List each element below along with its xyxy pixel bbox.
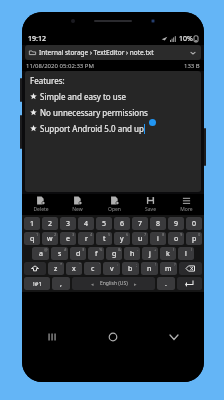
button[interactable]: & — [106, 247, 122, 260]
staticText: 6 — [120, 219, 125, 229]
button[interactable]: Key — [24, 262, 46, 275]
button[interactable]: * — [48, 262, 64, 275]
staticText: : — [117, 262, 119, 267]
button[interactable]: 5 — [96, 232, 112, 245]
staticText: b — [128, 264, 133, 274]
staticText: n — [147, 264, 152, 274]
button[interactable]: Recents — [22, 292, 82, 382]
staticText: English (US) — [100, 280, 128, 287]
button[interactable]: 4 — [78, 217, 94, 230]
staticText: 3 — [72, 232, 75, 237]
button[interactable]: 7 — [132, 217, 148, 230]
button[interactable]: Key — [177, 277, 202, 290]
staticText: Simple and easy to use — [40, 91, 127, 102]
staticText: y — [120, 234, 124, 244]
button[interactable]: ( — [160, 247, 176, 260]
staticText: g — [112, 249, 117, 259]
staticText: % — [99, 247, 103, 252]
staticText: " — [79, 262, 81, 267]
button[interactable]: @ — [32, 247, 49, 260]
button[interactable]: Save — [132, 194, 168, 215]
button[interactable]: , — [52, 277, 70, 290]
button[interactable]: ' — [84, 262, 101, 275]
button[interactable]: # — [51, 247, 68, 260]
button[interactable]: 0 — [186, 217, 202, 230]
button[interactable]: Features: — [25, 71, 201, 192]
staticText: 2 — [54, 232, 57, 237]
staticText: q — [30, 234, 35, 244]
staticText: 5 — [108, 232, 111, 237]
button[interactable]: + — [142, 247, 158, 260]
staticText: 0 — [192, 219, 197, 229]
button[interactable]: !#1 — [24, 277, 50, 290]
button[interactable]: 8 — [150, 232, 166, 245]
staticText: 2 — [48, 219, 53, 229]
button[interactable]: 6 — [114, 217, 130, 230]
button[interactable]: Internal storage › TextEditor › note.txt — [25, 45, 201, 60]
staticText: d — [76, 249, 81, 259]
button[interactable]: - — [124, 247, 140, 260]
button[interactable]: % — [88, 247, 104, 260]
button[interactable]: ? — [160, 262, 177, 275]
staticText: !#1 — [33, 280, 42, 288]
button[interactable]: 2 — [42, 232, 58, 245]
staticText: z — [54, 264, 58, 274]
staticText: ( — [173, 247, 175, 252]
button[interactable]: 3 — [60, 217, 76, 230]
button[interactable]: 9 — [168, 232, 184, 245]
staticText: + — [154, 247, 157, 252]
button[interactable]: Back — [143, 292, 204, 382]
button[interactable]: 0 — [186, 232, 202, 245]
staticText: c — [91, 264, 95, 274]
button[interactable]: : — [103, 262, 120, 275]
button[interactable]: . — [157, 277, 175, 290]
button[interactable]: 7 — [132, 232, 148, 245]
button[interactable]: Delete — [22, 194, 59, 215]
button[interactable]: ) — [178, 247, 194, 260]
staticText: s — [58, 249, 62, 259]
staticText: 8 — [156, 219, 161, 229]
staticText: o — [174, 234, 179, 244]
button[interactable]: ! — [141, 262, 158, 275]
button[interactable]: " — [66, 262, 82, 275]
button[interactable]: Home — [82, 292, 143, 382]
staticText: 10% — [179, 34, 193, 44]
staticText: & — [118, 247, 121, 252]
button[interactable]: 2 — [42, 217, 58, 230]
button[interactable]: Open — [96, 194, 132, 215]
button[interactable]: ◂ — [72, 277, 155, 290]
staticText: ? — [174, 262, 176, 267]
button[interactable]: 3 — [60, 232, 76, 245]
button[interactable]: 1 — [24, 217, 40, 230]
staticText: 1 — [30, 219, 35, 229]
button[interactable]: 4 — [78, 232, 94, 245]
staticText: Open — [108, 206, 121, 213]
staticText: a — [39, 249, 43, 259]
staticText: x — [72, 264, 76, 274]
button[interactable]: 9 — [168, 217, 184, 230]
button[interactable]: New — [59, 194, 96, 215]
staticText: - — [137, 247, 139, 252]
staticText: 6 — [126, 232, 129, 237]
button[interactable]: $ — [70, 247, 86, 260]
staticText: l — [185, 249, 187, 259]
button[interactable]: 5 — [96, 217, 112, 230]
staticText: i — [157, 234, 159, 244]
button[interactable]: ; — [122, 262, 139, 275]
staticText: 9 — [174, 219, 179, 229]
staticText: m — [165, 264, 172, 274]
button[interactable]: 6 — [114, 232, 130, 245]
button[interactable]: More — [168, 194, 204, 215]
staticText: 3 — [66, 219, 71, 229]
button[interactable]: 8 — [150, 217, 166, 230]
staticText: r — [85, 234, 88, 244]
staticText: 7 — [138, 219, 143, 229]
staticText: j — [149, 249, 151, 259]
button[interactable]: 1 — [24, 232, 40, 245]
staticText: New — [72, 206, 83, 213]
staticText: . — [165, 279, 167, 289]
staticText: e — [66, 234, 70, 244]
button[interactable]: Key — [179, 262, 202, 275]
staticText: 9 — [180, 232, 183, 237]
staticText: $ — [82, 247, 85, 252]
